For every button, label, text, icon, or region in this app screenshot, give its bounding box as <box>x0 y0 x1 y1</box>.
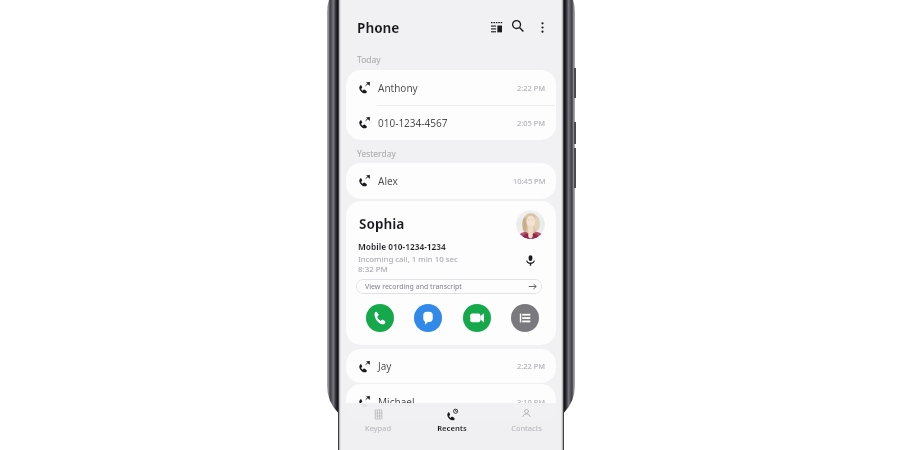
staticText: Contacts <box>511 423 542 433</box>
button[interactable]: More options <box>533 18 551 36</box>
staticText: Keypad <box>365 423 391 433</box>
staticText: 2:22 PM <box>517 83 546 93</box>
button[interactable]: Play recording <box>521 251 539 269</box>
staticText: Recents <box>437 423 467 433</box>
button[interactable]: Video call <box>463 304 491 332</box>
button[interactable]: Keypad <box>341 403 415 450</box>
staticText: 3:10 PM <box>517 397 546 407</box>
staticText: Jay <box>378 359 392 373</box>
staticText: Sophia <box>359 215 405 233</box>
staticText: Mobile 010-1234-1234 <box>358 241 446 252</box>
staticText: Michael <box>378 395 415 409</box>
button[interactable]: Recents <box>415 403 489 450</box>
staticText: Incoming call, 1 min 10 sec <box>358 254 458 265</box>
staticText: 10:45 PM <box>513 176 546 186</box>
button[interactable]: View options <box>487 18 505 36</box>
button[interactable]: Call <box>366 304 394 332</box>
button[interactable]: Message <box>414 304 442 332</box>
button[interactable]: Call details <box>511 304 539 332</box>
staticText: Yesterday <box>357 148 396 160</box>
staticText: Anthony <box>378 81 418 95</box>
staticText: 010-1234-4567 <box>378 116 448 130</box>
staticText: 8:32 PM <box>358 264 388 275</box>
button[interactable]: Jay <box>346 349 556 383</box>
staticText: Alex <box>378 174 398 188</box>
button[interactable]: Contact photo <box>516 210 545 239</box>
button[interactable]: Alex <box>346 163 556 198</box>
staticText: 2:05 PM <box>517 118 546 128</box>
button[interactable]: View recording and transcript <box>356 279 542 294</box>
staticText: 2:22 PM <box>517 361 546 371</box>
button[interactable]: Contacts <box>489 403 563 450</box>
button[interactable]: Michael <box>346 384 556 419</box>
button[interactable]: Search <box>509 17 527 35</box>
button[interactable]: Anthony <box>346 70 556 105</box>
staticText: Phone <box>357 19 400 37</box>
button[interactable]: 010-1234-4567 <box>346 105 556 140</box>
staticText: View recording and transcript <box>365 282 462 292</box>
staticText: Today <box>357 54 381 66</box>
